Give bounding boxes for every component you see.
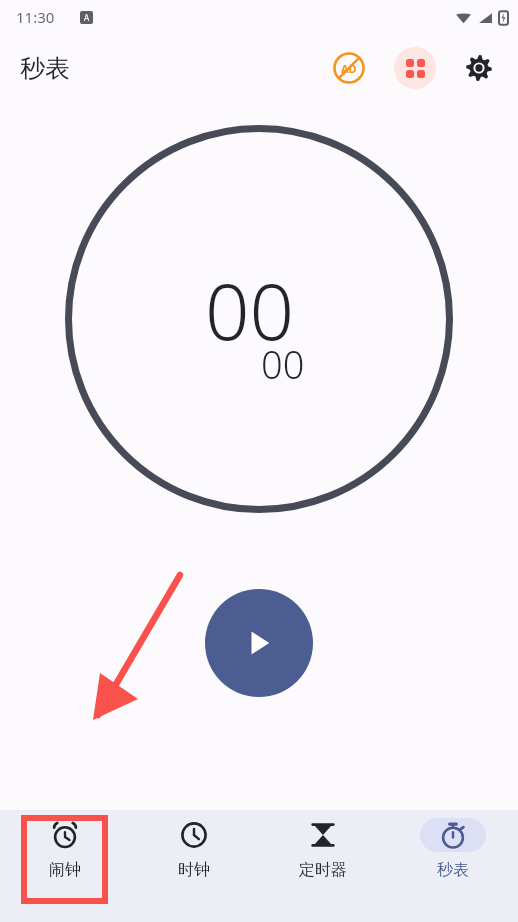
staticText: AD <box>341 61 357 76</box>
button[interactable]: 闹钟 <box>0 810 129 922</box>
staticText: 11:30 <box>16 7 55 27</box>
staticText: 定时器 <box>299 860 347 880</box>
staticText: 00 <box>205 257 295 363</box>
staticText: 00 <box>261 338 305 390</box>
staticText: 时钟 <box>178 860 210 880</box>
staticText: A <box>84 12 90 23</box>
staticText: 秒表 <box>437 860 469 880</box>
staticText: 闹钟 <box>49 860 81 880</box>
button[interactable]: Settings <box>458 47 500 89</box>
button[interactable]: 定时器 <box>258 810 388 922</box>
button[interactable]: Remove ads <box>326 45 372 91</box>
button[interactable]: Apps <box>394 47 436 89</box>
button[interactable]: Start <box>205 589 313 697</box>
staticText: 秒表 <box>20 53 70 84</box>
button[interactable]: 时钟 <box>129 810 258 922</box>
button[interactable]: 秒表 <box>388 810 518 922</box>
